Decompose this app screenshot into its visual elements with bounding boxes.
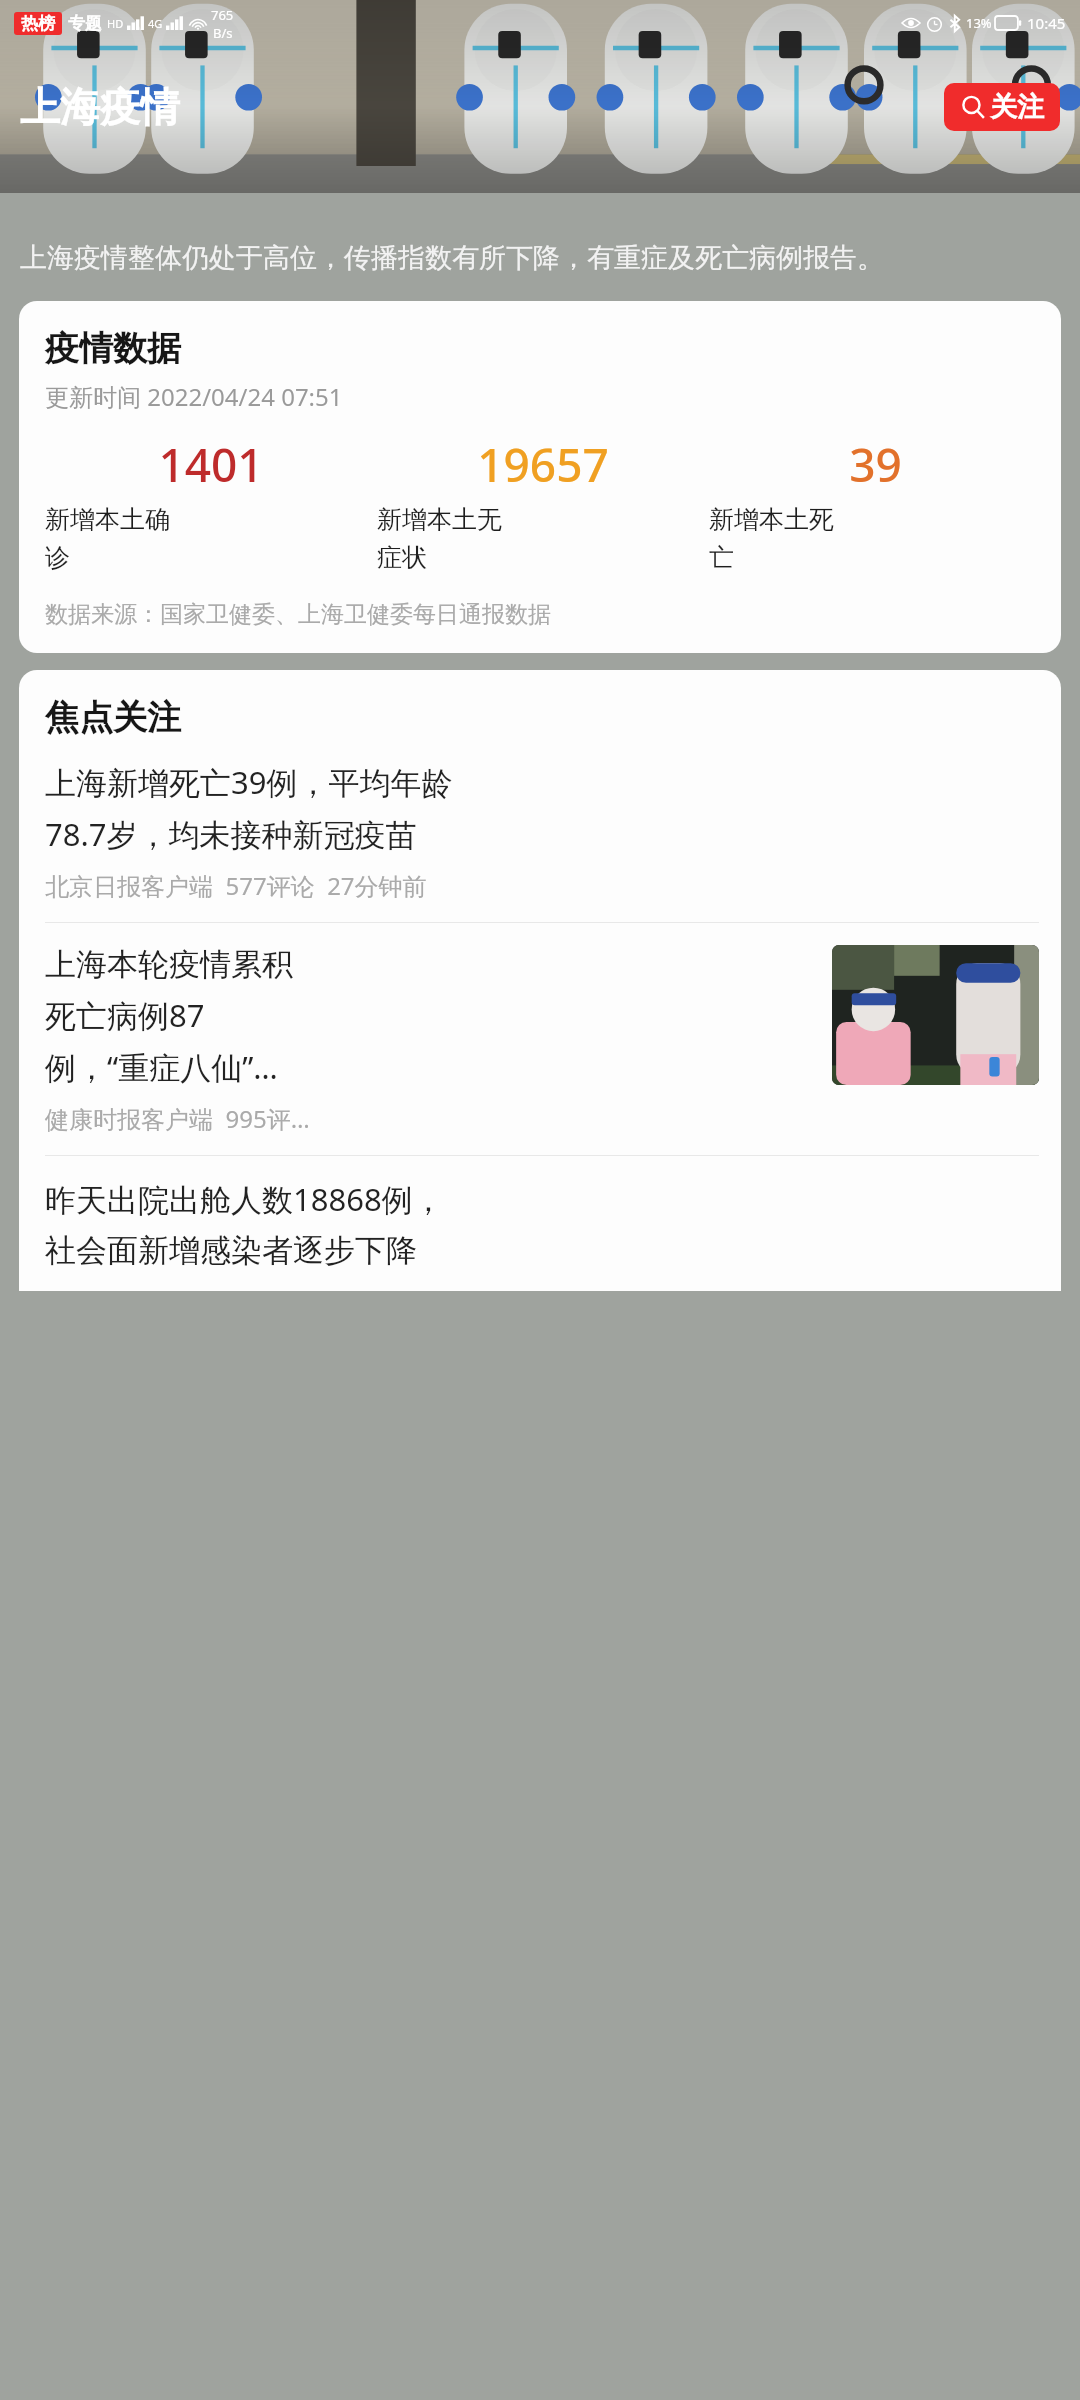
staticText: 北京日报客户端 577评论 27分钟前: [45, 869, 427, 902]
staticText: 更新时间 2022/04/24 07:51: [45, 380, 343, 413]
staticText: 新增本土确 诊: [45, 504, 170, 574]
staticText: 上海新增死亡39例，平均年龄 78.7岁，均未接种新冠疫苗: [45, 761, 453, 855]
staticText: 疫情数据: [45, 327, 181, 370]
staticText: 热榜: [21, 13, 55, 34]
staticText: 关注: [990, 90, 1044, 124]
staticText: 1401: [158, 433, 264, 496]
staticText: HD: [107, 16, 124, 31]
staticText: 4G: [148, 16, 163, 31]
staticText: 39: [849, 433, 902, 496]
staticText: 专题: [68, 13, 102, 34]
staticText: 焦点关注: [45, 696, 181, 739]
button[interactable]: 昨天出院出舱人数18868例， 社会面新增感染者逐步下降: [45, 1178, 444, 1271]
button[interactable]: 上海新增死亡39例，平均年龄 78.7岁，均未接种新冠疫苗: [45, 761, 1039, 902]
staticText: 10:45: [1027, 13, 1066, 33]
button[interactable]: 疫情数据: [19, 301, 1061, 653]
staticText: 上海本轮疫情累积 死亡病例87 例，“重症八仙”…: [45, 945, 293, 1088]
staticText: 19657: [477, 433, 609, 496]
staticText: 上海疫情整体仍处于高位，传播指数有所下降，有重症及死亡病例报告。: [20, 241, 884, 275]
staticText: 健康时报客户端 995评…: [45, 1102, 310, 1135]
staticText: 新增本土死 亡: [709, 504, 834, 574]
button[interactable]: 关注: [944, 83, 1060, 131]
staticText: 13%: [966, 14, 992, 32]
staticText: 上海疫情: [20, 82, 180, 132]
staticText: 数据来源：国家卫健委、上海卫健委每日通报数据: [45, 600, 551, 629]
staticText: 新增本土无 症状: [377, 504, 502, 574]
button[interactable]: 上海本轮疫情累积 死亡病例87 例，“重症八仙”…: [45, 945, 1039, 1135]
staticText: B/s: [213, 24, 233, 40]
staticText: 765: [211, 6, 234, 24]
